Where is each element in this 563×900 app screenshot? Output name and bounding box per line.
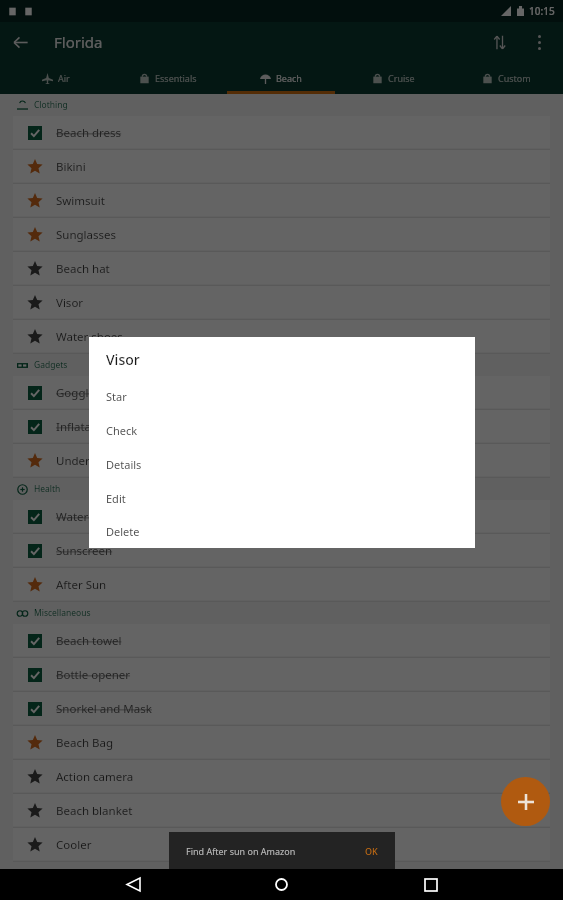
staticText: Cooler xyxy=(56,837,92,853)
button[interactable]: Goggles xyxy=(13,376,550,408)
button[interactable]: Beach blanket xyxy=(13,794,550,826)
staticText: Sunglasses xyxy=(56,227,117,243)
button[interactable]: Cooler xyxy=(13,828,550,860)
staticText: Action camera xyxy=(56,769,134,785)
staticText: Beach Bag xyxy=(56,735,114,751)
button[interactable]: Beach Bag xyxy=(13,726,550,758)
staticText: Beach blanket xyxy=(56,803,133,819)
button[interactable]: Beach dress xyxy=(13,116,550,148)
staticText: OK xyxy=(365,845,378,857)
staticText: Visor xyxy=(106,350,140,369)
staticText: Custom xyxy=(498,72,531,84)
staticText: Essentials xyxy=(155,72,197,84)
staticText: Find After sun on Amazon xyxy=(186,845,296,857)
button[interactable]: Beach xyxy=(224,62,337,94)
button[interactable]: Find After sun on Amazon xyxy=(169,832,395,869)
staticText: Snorkel and Mask xyxy=(56,701,152,717)
staticText: Check xyxy=(106,423,138,438)
staticText: Water bottle xyxy=(56,509,124,525)
staticText: Visor xyxy=(56,295,84,311)
staticText: Beach dress xyxy=(56,125,122,141)
staticText: Water shoes xyxy=(56,329,123,345)
button[interactable]: Recents xyxy=(415,869,446,900)
button[interactable]: Custom xyxy=(450,62,563,94)
button[interactable]: More options xyxy=(519,22,559,62)
staticText: Cruise xyxy=(388,72,415,84)
staticText: Miscellaneous xyxy=(34,607,91,619)
button[interactable]: Sunglasses xyxy=(13,218,550,250)
button[interactable]: Bikini xyxy=(13,150,550,182)
staticText: Swimsuit xyxy=(56,193,105,209)
button[interactable]: Star xyxy=(89,379,475,413)
staticText: Sunscreen xyxy=(56,543,113,559)
staticText: Delete xyxy=(106,524,140,539)
staticText: Star xyxy=(106,389,127,404)
staticText: Goggles xyxy=(56,385,101,401)
staticText: Florida xyxy=(54,32,103,52)
staticText: Bottle opener xyxy=(56,667,131,683)
button[interactable]: Add item xyxy=(501,777,550,826)
button[interactable]: Sort xyxy=(479,22,519,62)
button[interactable]: Swimsuit xyxy=(13,184,550,216)
button[interactable]: Edit xyxy=(89,481,475,515)
staticText: Bikini xyxy=(56,159,86,175)
button[interactable]: After Sun xyxy=(13,568,550,600)
staticText: Clothing xyxy=(34,99,68,111)
button[interactable]: Back xyxy=(0,22,40,62)
staticText: Details xyxy=(106,457,142,472)
button[interactable]: Water bottle xyxy=(13,500,550,532)
button[interactable]: Air xyxy=(0,62,112,94)
staticText: 10:15 xyxy=(529,4,555,18)
button[interactable]: Delete xyxy=(89,515,475,548)
staticText: Beach hat xyxy=(56,261,110,277)
button[interactable]: Beach hat xyxy=(13,252,550,284)
staticText: Air xyxy=(58,72,70,84)
staticText: Inflatable xyxy=(56,419,108,435)
button[interactable]: Underwater camera xyxy=(13,444,550,476)
button[interactable]: Details xyxy=(89,447,475,481)
staticText: After Sun xyxy=(56,577,107,593)
button[interactable]: Beach towel xyxy=(13,624,550,656)
staticText: Edit xyxy=(106,491,126,506)
button[interactable]: Home xyxy=(266,869,297,900)
button[interactable]: Water shoes xyxy=(13,320,550,352)
button[interactable]: Cruise xyxy=(337,62,450,94)
button[interactable]: Essentials xyxy=(112,62,224,94)
button[interactable]: Snorkel and Mask xyxy=(13,692,550,724)
button[interactable]: Inflatable xyxy=(13,410,550,442)
staticText: Beach xyxy=(276,72,302,84)
staticText: Beach towel xyxy=(56,633,122,649)
button[interactable]: Back xyxy=(118,869,149,900)
button[interactable]: Visor xyxy=(13,286,550,318)
button[interactable]: Bottle opener xyxy=(13,658,550,690)
staticText: Health xyxy=(34,483,61,495)
button[interactable]: Action camera xyxy=(13,760,550,792)
staticText: Gadgets xyxy=(34,359,68,371)
button[interactable]: Check xyxy=(89,413,475,447)
staticText: Underwater camera xyxy=(56,453,164,469)
button[interactable]: Sunscreen xyxy=(13,534,550,566)
